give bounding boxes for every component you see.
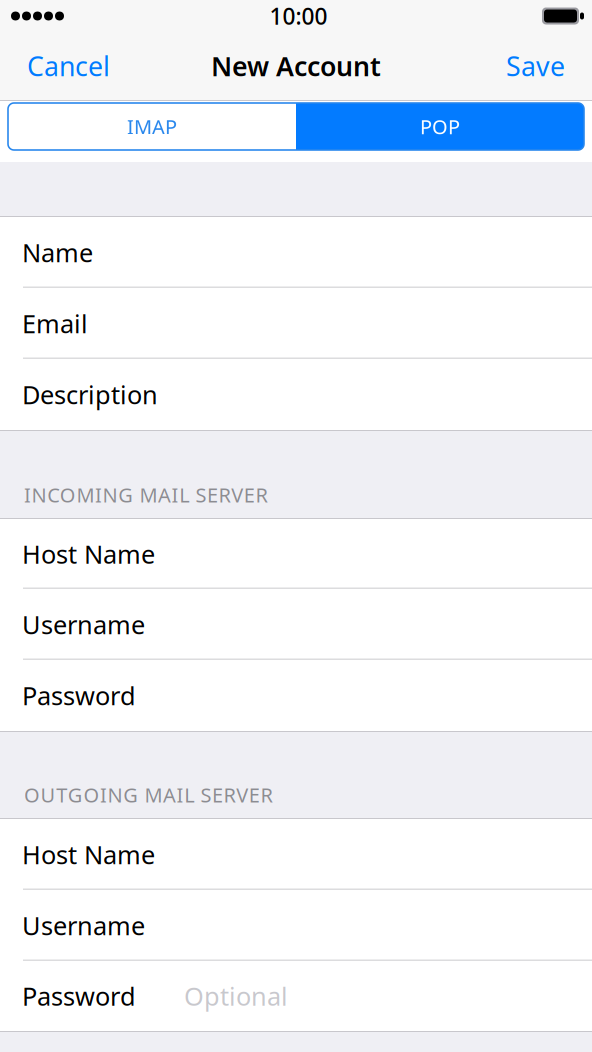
staticText: Username (22, 909, 145, 942)
staticText: Name (22, 236, 93, 269)
button[interactable]: Password (0, 961, 592, 1031)
staticText: Email (22, 307, 88, 340)
staticText: Host Name (22, 838, 155, 871)
staticText: Password (22, 979, 136, 1013)
button[interactable]: Description (0, 359, 592, 430)
staticText: Host Name (22, 537, 155, 571)
staticText: Cancel (27, 48, 110, 84)
staticText: OUTGOING MAIL SERVER (24, 781, 272, 808)
button[interactable]: Host Name (0, 519, 592, 589)
staticText: Password (22, 679, 136, 712)
staticText: IMAP (127, 113, 177, 140)
staticText: Username (22, 608, 145, 641)
staticText: Optional (184, 979, 288, 1013)
staticText: Save (506, 48, 565, 84)
button[interactable]: IMAP (8, 103, 296, 150)
button[interactable]: Host Name (0, 819, 592, 890)
button[interactable]: Password (0, 660, 592, 731)
button[interactable]: Save (490, 36, 592, 96)
staticText: POP (420, 113, 460, 140)
staticText: Description (22, 378, 158, 411)
staticText: New Account (211, 48, 381, 84)
button[interactable]: POP (296, 103, 584, 150)
button[interactable]: Email (0, 288, 592, 359)
staticText: 10:00 (269, 1, 327, 31)
button[interactable]: Username (0, 589, 592, 660)
staticText: INCOMING MAIL SERVER (24, 481, 267, 508)
button[interactable]: Username (0, 890, 592, 961)
button[interactable]: Cancel (0, 36, 126, 96)
button[interactable]: Name (0, 217, 592, 288)
